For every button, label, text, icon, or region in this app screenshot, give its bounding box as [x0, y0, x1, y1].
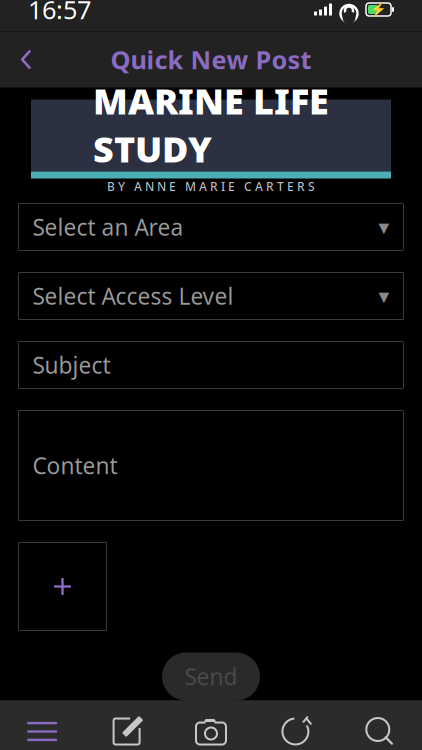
staticText: 16:57 [28, 0, 91, 26]
staticText: Content [32, 450, 117, 480]
button[interactable]: Camera [169, 700, 253, 750]
staticText: B Y A N N E M A R I E C A R T E R S [107, 178, 315, 194]
staticText: Select an Area [32, 212, 183, 242]
button[interactable]: Menu [0, 700, 84, 750]
staticText: ⚡ [370, 2, 387, 17]
button[interactable]: Refresh [253, 700, 338, 750]
button[interactable]: Add photo [18, 542, 106, 630]
staticText: Send [184, 661, 237, 691]
button[interactable]: Send [162, 652, 260, 700]
staticText: MARINE LIFE STUDY [93, 77, 329, 172]
staticText: ▾ [378, 215, 389, 239]
staticText: Quick New Post [110, 43, 311, 76]
button[interactable]: Subject [18, 341, 403, 388]
staticText: ▾ [378, 284, 389, 308]
button[interactable]: Compose [84, 700, 169, 750]
staticText: Subject [32, 350, 110, 380]
button[interactable]: Content [18, 410, 403, 520]
button[interactable]: Select Access Level [18, 272, 403, 319]
button[interactable]: Select an Area [18, 203, 403, 250]
button[interactable]: Back [4, 31, 48, 87]
staticText: Select Access Level [32, 281, 233, 311]
button[interactable]: Search [338, 700, 422, 750]
